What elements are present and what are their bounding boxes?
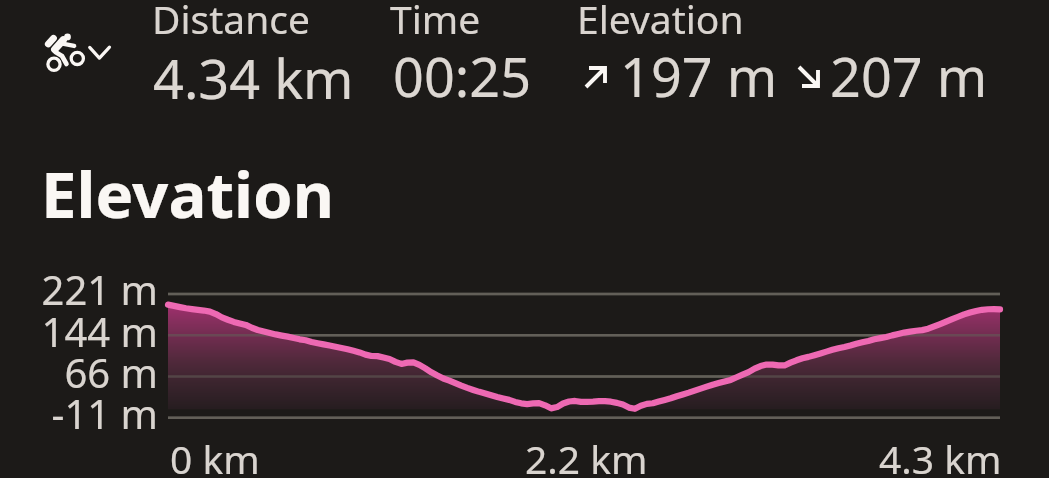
staticText: 207 m: [830, 39, 988, 113]
staticText: 144 m: [0, 304, 158, 358]
staticText: 4.34 km: [153, 41, 354, 115]
staticText: 221 m: [0, 262, 158, 316]
staticText: 197 m: [620, 39, 778, 113]
button[interactable]: Change activity type: [38, 28, 112, 75]
staticText: 2.2 km: [525, 432, 648, 478]
staticText: Elevation: [41, 150, 334, 236]
staticText: -11 m: [0, 386, 158, 440]
staticText: 0 km: [170, 432, 260, 478]
staticText: 00:25: [393, 39, 532, 113]
staticText: 66 m: [0, 345, 158, 399]
staticText: 4.3 km: [879, 432, 1002, 478]
staticText: Distance: [152, 0, 310, 45]
staticText: Time: [390, 0, 481, 45]
staticText: Elevation: [577, 0, 744, 45]
